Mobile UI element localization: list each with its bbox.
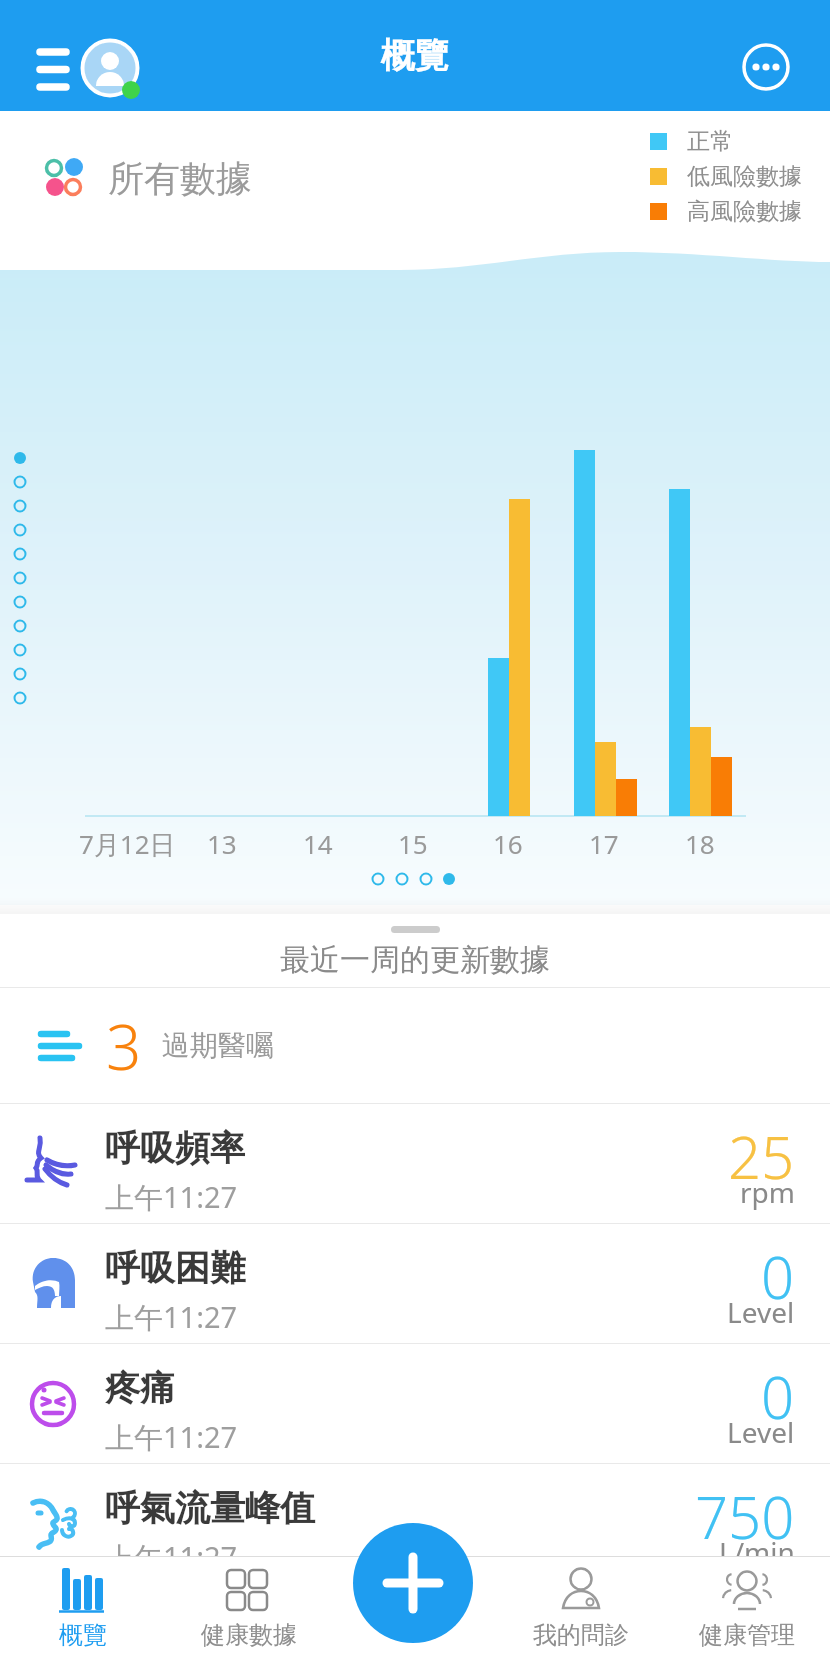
staticText: 上午11:27 — [105, 1297, 238, 1337]
staticText: Level — [727, 1293, 795, 1331]
button[interactable]: 我的問診 — [498, 1556, 664, 1672]
staticText: 13 — [207, 826, 237, 860]
staticText: 過期醫囑 — [162, 1028, 274, 1063]
staticText: 低風險數據 — [687, 162, 802, 191]
button[interactable]: 健康數據 — [166, 1556, 332, 1672]
staticText: 上午11:27 — [105, 1177, 238, 1217]
staticText: 14 — [303, 826, 333, 860]
staticText: 我的問診 — [533, 1620, 629, 1650]
staticText: 呼氣流量峰值 — [105, 1486, 315, 1530]
staticText: 呼吸頻率 — [105, 1126, 245, 1170]
button[interactable]: 疼痛 — [0, 1344, 830, 1463]
staticText: Level — [727, 1413, 795, 1451]
staticText: 健康管理 — [699, 1620, 795, 1650]
button[interactable] — [353, 1523, 473, 1643]
button[interactable] — [30, 35, 150, 105]
staticText: 3 — [106, 1004, 142, 1088]
button[interactable]: 健康管理 — [664, 1556, 830, 1672]
button[interactable]: 呼氣流量峰值 — [0, 1464, 830, 1583]
staticText: 概覽 — [381, 34, 449, 77]
staticText: 7月12日 — [79, 826, 176, 860]
staticText: rpm — [740, 1173, 795, 1211]
staticText: 概覽 — [59, 1620, 107, 1650]
staticText: 25 — [728, 1117, 795, 1196]
staticText: 750 — [695, 1477, 795, 1556]
button[interactable] — [740, 41, 792, 93]
staticText: 上午11:27 — [105, 1537, 238, 1577]
staticText: L/min — [719, 1533, 795, 1571]
staticText: 高風險數據 — [687, 197, 802, 226]
staticText: 最近一周的更新數據 — [280, 941, 550, 979]
staticText: 正常 — [687, 127, 733, 156]
staticText: 疼痛 — [105, 1366, 175, 1410]
staticText: 所有數據 — [108, 156, 252, 201]
staticText: 0 — [761, 1237, 795, 1316]
button[interactable]: 呼吸困難 — [0, 1224, 830, 1343]
staticText: 16 — [493, 826, 523, 860]
staticText: 0 — [761, 1357, 795, 1436]
button[interactable]: 3 — [0, 988, 830, 1103]
staticText: 17 — [589, 826, 619, 860]
staticText: 上午11:27 — [105, 1417, 238, 1457]
button[interactable]: 概覽 — [0, 1556, 166, 1672]
staticText: 15 — [398, 826, 428, 860]
staticText: 18 — [685, 826, 715, 860]
staticText: 健康數據 — [201, 1620, 297, 1650]
staticText: 呼吸困難 — [105, 1246, 245, 1290]
button[interactable]: 呼吸頻率 — [0, 1104, 830, 1223]
